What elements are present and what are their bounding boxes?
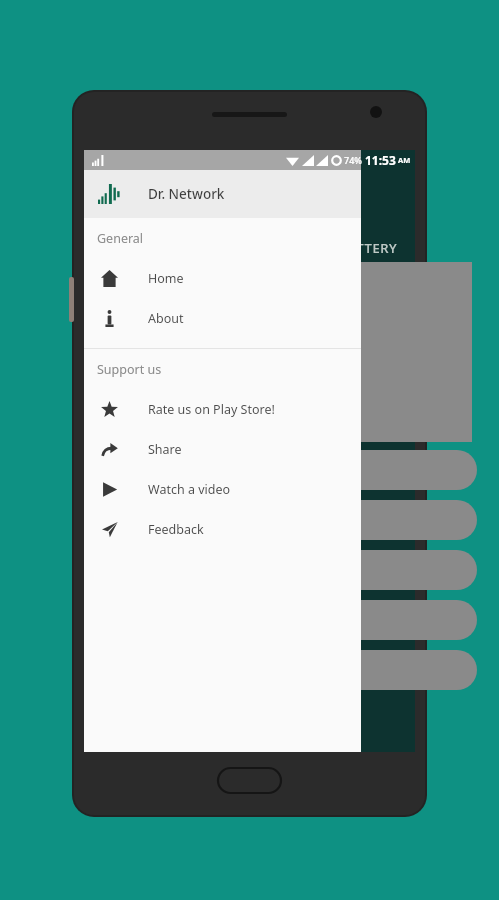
staticText: BATTERY (339, 239, 398, 257)
button[interactable]: Home (84, 258, 361, 298)
staticText: Support us (97, 361, 162, 378)
staticText: Dr. Network (148, 185, 225, 203)
button[interactable]: Watch a video (84, 469, 361, 509)
button[interactable]: About (84, 298, 361, 338)
staticText: AM (398, 155, 411, 165)
button[interactable]: Dr. Network (84, 170, 361, 218)
staticText: 3711 (333, 611, 363, 629)
staticText: Watch a video (148, 481, 231, 498)
staticText: Feedback (148, 521, 204, 538)
button[interactable]: Feedback (84, 509, 361, 549)
staticText: Home (148, 270, 184, 287)
staticText: General (97, 230, 144, 247)
staticText: 74% (344, 154, 362, 166)
staticText: Rate us on Play Store! (148, 401, 275, 418)
button[interactable]: Share (84, 429, 361, 469)
staticText: Share (148, 441, 182, 458)
staticText: About (148, 310, 184, 327)
staticText: 11:53 (365, 152, 396, 168)
button[interactable]: Rate us on Play Store! (84, 389, 361, 429)
